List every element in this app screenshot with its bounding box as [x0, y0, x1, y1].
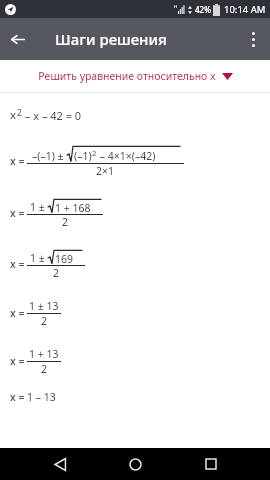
staticText: 1 ± — [30, 200, 48, 214]
staticText: 10:14 AM — [224, 3, 266, 16]
staticText: 1 – 13 — [27, 390, 56, 404]
staticText: (–1) — [74, 149, 92, 163]
staticText: – x – 42 = 0 — [22, 108, 82, 123]
staticText: x = — [10, 257, 25, 271]
staticText: 1 + 13 — [29, 347, 59, 361]
staticText: 2 — [17, 107, 22, 118]
staticText: 42% — [195, 4, 211, 15]
staticText: x = — [10, 354, 25, 368]
staticText: H — [174, 4, 177, 9]
staticText: x = — [10, 390, 25, 404]
staticText: x — [10, 107, 17, 123]
button[interactable]: Home — [119, 448, 151, 480]
staticText: Шаги решения — [55, 29, 167, 49]
staticText: x = — [10, 306, 25, 320]
staticText: –(–1) ± — [32, 149, 67, 163]
button[interactable]: More options — [236, 22, 270, 56]
button[interactable]: Решить уравнение относительно x — [0, 60, 270, 92]
button[interactable]: Back — [0, 22, 34, 56]
staticText: x = — [10, 206, 25, 220]
staticText: x = — [10, 154, 25, 168]
staticText: 2×1 — [96, 164, 115, 178]
staticText: 169 — [55, 252, 74, 265]
staticText: – 4×1×(–42) — [97, 149, 156, 163]
button[interactable]: Back — [44, 448, 76, 480]
staticText: 2 — [41, 362, 48, 376]
staticText: Решить уравнение относительно x — [38, 69, 216, 83]
staticText: 2 — [53, 266, 60, 280]
staticText: 2 — [92, 148, 97, 158]
staticText: 1 ± — [30, 251, 48, 265]
staticText: 2 — [62, 215, 69, 229]
staticText: 1 ± 13 — [29, 299, 59, 313]
button[interactable]: Recent apps — [195, 448, 227, 480]
staticText: 2 — [41, 314, 48, 328]
staticText: 1 + 168 — [55, 201, 91, 214]
